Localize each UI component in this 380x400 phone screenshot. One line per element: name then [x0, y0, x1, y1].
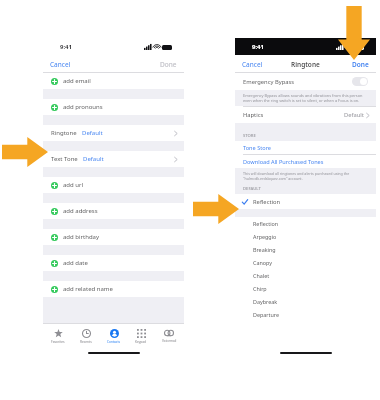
button[interactable]: Tone Store [235, 141, 376, 154]
staticText: Canopy [253, 259, 272, 266]
button[interactable]: Cancel [43, 57, 78, 72]
button[interactable]: Done [153, 57, 184, 72]
staticText: add url [63, 181, 84, 189]
button[interactable]: Download All Purchased Tones [235, 155, 376, 168]
button[interactable]: Reflection [235, 194, 376, 209]
staticText: Haptics [243, 111, 264, 119]
staticText: Reflection [253, 220, 279, 227]
button[interactable]: Cancel [235, 57, 270, 72]
button[interactable]: Voicemail [156, 324, 182, 348]
staticText: Done [352, 60, 369, 69]
staticText: Default [83, 155, 104, 163]
staticText: add date [63, 259, 88, 267]
button[interactable]: Haptics [235, 107, 376, 123]
button[interactable]: Chalet [235, 269, 376, 282]
staticText: Default [82, 129, 103, 137]
staticText: add email [63, 77, 91, 85]
staticText: add birthday [63, 233, 100, 241]
staticText: STORE [243, 133, 256, 139]
staticText: Text Tone [51, 155, 78, 163]
staticText: Breaking [253, 246, 276, 253]
staticText: Recents [80, 340, 92, 344]
staticText: Tone Store [243, 144, 271, 152]
button[interactable]: Arpeggio [235, 230, 376, 243]
button[interactable]: add url [43, 177, 184, 193]
staticText: Contacts [107, 340, 121, 344]
staticText: Reflection [253, 198, 281, 206]
staticText: Emergency Bypass [243, 78, 295, 86]
button[interactable]: Ringtone [43, 125, 184, 141]
button[interactable]: Recents [73, 324, 99, 348]
staticText: Done [160, 60, 177, 69]
staticText: Ringtone [291, 60, 320, 69]
button[interactable]: add email [43, 73, 184, 89]
staticText: Ringtone [51, 129, 77, 137]
button[interactable]: Departure [235, 308, 376, 321]
staticText: DEFAULT [243, 186, 261, 192]
button[interactable]: Contacts [101, 324, 127, 348]
staticText: Voicemail [162, 339, 177, 343]
staticText: Emergency Bypass allows sounds and vibra… [243, 93, 368, 103]
staticText: Favorites [51, 340, 65, 344]
button[interactable]: add date [43, 255, 184, 271]
button[interactable]: add pronouns [43, 99, 184, 115]
staticText: Daybreak [253, 298, 278, 305]
button[interactable]: add address [43, 203, 184, 219]
other: Ringtone row [2, 137, 48, 167]
button[interactable]: Breaking [235, 243, 376, 256]
button[interactable]: Daybreak [235, 295, 376, 308]
staticText: Download All Purchased Tones [243, 158, 324, 166]
staticText: 9:41 [252, 43, 264, 51]
staticText: 9:41 [60, 43, 72, 51]
staticText: Cancel [50, 60, 71, 69]
staticText: This will download all ringtones and ale… [243, 171, 368, 181]
staticText: Keypad [135, 340, 147, 344]
button[interactable]: add birthday [43, 229, 184, 245]
button[interactable]: Favorites [45, 324, 71, 348]
staticText: Cancel [242, 60, 263, 69]
staticText: Chirp [253, 285, 267, 292]
button[interactable]: Reflection [235, 217, 376, 230]
button[interactable]: Keypad [128, 324, 154, 348]
button[interactable]: Emergency Bypass [235, 73, 376, 90]
button[interactable]: Text Tone [43, 151, 184, 167]
button[interactable]: add related name [43, 281, 184, 297]
staticText: add address [63, 207, 98, 215]
button[interactable]: Canopy [235, 256, 376, 269]
staticText: Departure [253, 311, 279, 318]
button[interactable]: Chirp [235, 282, 376, 295]
staticText: Chalet [253, 272, 270, 279]
staticText: Default [344, 111, 364, 119]
staticText: add related name [63, 285, 113, 293]
staticText: Arpeggio [253, 233, 277, 240]
other: Default section [193, 194, 239, 224]
other: Done button [338, 6, 370, 60]
staticText: add pronouns [63, 103, 103, 111]
button[interactable]: Done [345, 57, 376, 72]
